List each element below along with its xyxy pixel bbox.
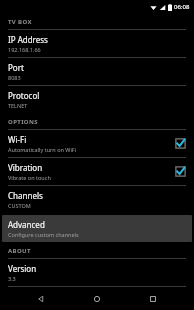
button[interactable]: Vibration xyxy=(2,158,192,185)
staticText: TV BOX xyxy=(8,18,32,26)
staticText: Advanced xyxy=(8,219,45,230)
button[interactable]: Back xyxy=(26,288,56,310)
button[interactable]: Advanced xyxy=(2,215,192,242)
staticText: Wi-Fi xyxy=(8,134,27,145)
button[interactable]: IP Address xyxy=(2,30,192,57)
button[interactable]: Wi-Fi xyxy=(2,130,192,157)
staticText: Version xyxy=(8,263,37,274)
staticText: Vibrate on touch xyxy=(8,174,51,181)
button[interactable]: Recent apps xyxy=(138,288,168,310)
staticText: Protocol xyxy=(8,90,40,101)
button[interactable]: Protocol xyxy=(2,86,192,113)
staticText: Channels xyxy=(8,190,43,201)
staticText: 192.168.1.66 xyxy=(8,46,41,53)
staticText: Automatically turn on WiFi xyxy=(8,146,77,153)
staticText: 3.3 xyxy=(8,275,16,282)
staticText: 06:08 xyxy=(174,3,190,11)
staticText: OPTIONS xyxy=(8,118,38,126)
staticText: Port xyxy=(8,62,24,73)
button[interactable]: Port xyxy=(2,58,192,85)
staticText: ABOUT xyxy=(8,247,31,255)
staticText: CUSTOM xyxy=(8,202,31,209)
staticText: 8083 xyxy=(8,74,21,81)
staticText: Vibration xyxy=(8,162,43,173)
staticText: TELNET xyxy=(8,102,28,109)
staticText: Configure custom channels xyxy=(8,231,79,238)
button[interactable]: Home xyxy=(82,288,112,310)
staticText: IP Address xyxy=(8,34,48,45)
button[interactable]: Channels xyxy=(2,186,192,213)
button[interactable]: Version xyxy=(2,259,192,286)
